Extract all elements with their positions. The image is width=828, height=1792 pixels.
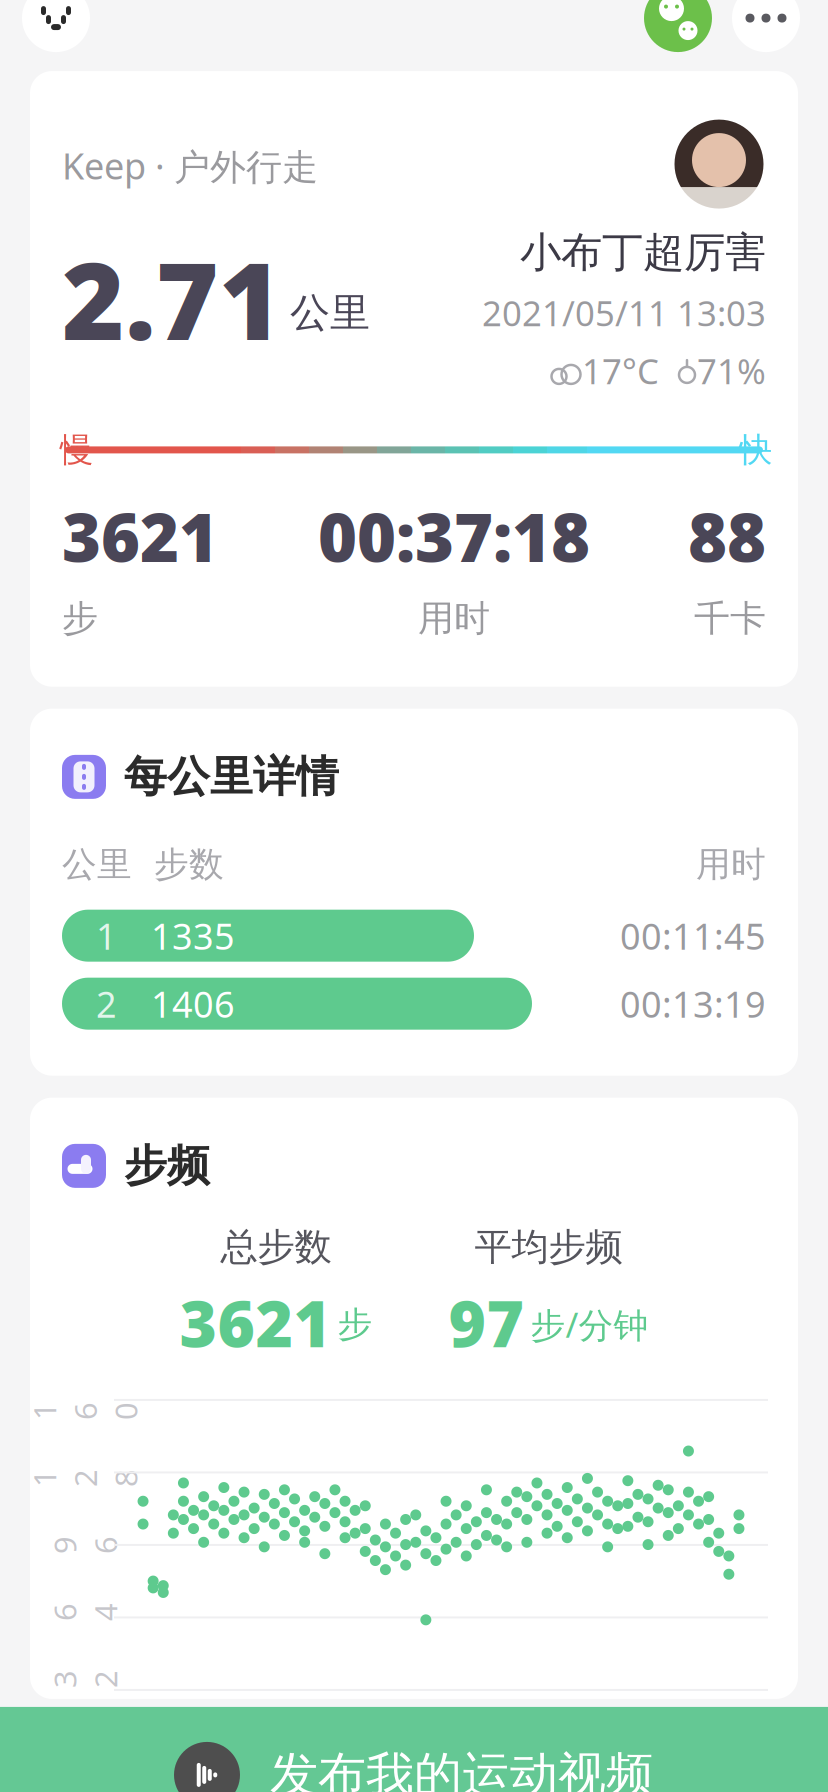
staticText: 发布我的运动视频	[270, 1745, 654, 1792]
staticText: 3621	[179, 1280, 331, 1365]
staticText: 千卡	[694, 596, 766, 641]
staticText: 小布丁超厉害	[520, 227, 766, 278]
staticText: 00:11:45	[620, 912, 766, 960]
button[interactable]: Share to WeChat	[644, 0, 712, 52]
staticText: 3621	[62, 492, 218, 580]
staticText: 2021/05/11 13:03	[482, 290, 766, 336]
staticText: 32	[76, 1638, 94, 1720]
staticText: 1	[96, 912, 117, 960]
staticText: 128	[76, 1417, 94, 1539]
staticText: 步频	[124, 1140, 210, 1192]
staticText: 160	[76, 1350, 94, 1472]
staticText: 88	[688, 492, 766, 580]
staticText: 步/分钟	[530, 1301, 648, 1347]
staticText: 1406	[151, 980, 235, 1028]
staticText: 用时	[696, 843, 766, 886]
staticText: 公里	[290, 288, 370, 337]
staticText: 1335	[151, 912, 235, 960]
button[interactable]: 发布我的运动视频	[0, 1707, 828, 1792]
staticText: 71%	[697, 348, 766, 394]
staticText: 00:13:19	[620, 980, 766, 1028]
staticText: 步	[337, 1303, 372, 1346]
button[interactable]: Collapse	[22, 0, 90, 52]
staticText: 步	[62, 596, 98, 641]
button[interactable]: More options	[732, 0, 800, 52]
staticText: 2	[96, 980, 117, 1028]
staticText: 00:37:18	[318, 492, 590, 580]
staticText: 步数	[154, 843, 224, 886]
staticText: 平均步频	[474, 1224, 622, 1270]
staticText: 慢	[60, 429, 93, 470]
staticText: 17°C	[582, 348, 659, 394]
staticText: 用时	[418, 596, 490, 641]
staticText: 总步数	[220, 1224, 331, 1270]
staticText: 每公里详情	[124, 751, 339, 803]
staticText: 快	[739, 429, 772, 470]
staticText: 公里	[62, 843, 132, 886]
staticText: Keep · 户外行走	[62, 142, 318, 190]
staticText: 97	[448, 1280, 524, 1365]
staticText: 2.71	[62, 228, 282, 369]
